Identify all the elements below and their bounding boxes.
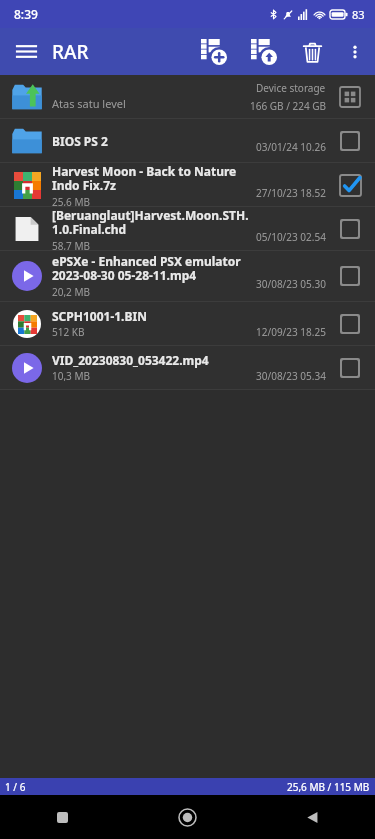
staticText: 05/10/23 02.54 bbox=[256, 230, 326, 244]
button[interactable]: Home bbox=[125, 795, 250, 839]
button[interactable]: Harvest Moon - Back to Nature Indo Fix.7… bbox=[0, 163, 375, 206]
staticText: Atas satu level bbox=[52, 96, 126, 111]
staticText: Harvest Moon - Back to Nature Indo Fix.7… bbox=[52, 163, 250, 194]
staticText: 58,7 MB bbox=[52, 239, 91, 250]
button[interactable]: Add to archive bbox=[189, 28, 239, 75]
button[interactable]: Select item bbox=[335, 261, 365, 291]
staticText: 30/08/23 05.30 bbox=[256, 277, 326, 291]
staticText: [Beruanglaut]Harvest.Moon.STH.1.0.Final.… bbox=[52, 207, 250, 238]
staticText: 03/01/24 10.26 bbox=[256, 140, 326, 154]
button[interactable]: ePSXe - Enhanced PSX emulator 2023-08-30… bbox=[0, 251, 375, 301]
staticText: ePSXe - Enhanced PSX emulator 2023-08-30… bbox=[52, 253, 250, 284]
button[interactable]: Extract archive bbox=[239, 28, 289, 75]
button[interactable]: VID_20230830_053422.mp4 bbox=[0, 346, 375, 389]
button[interactable]: Back bbox=[250, 795, 375, 839]
button[interactable]: Change view bbox=[335, 82, 365, 112]
button[interactable]: Atas satu level bbox=[0, 75, 375, 118]
button[interactable]: Select item bbox=[335, 309, 365, 339]
staticText: 8:39 bbox=[14, 6, 38, 22]
button[interactable]: Recent apps bbox=[0, 795, 125, 839]
staticText: 83 bbox=[352, 7, 365, 22]
staticText: Device storage bbox=[256, 81, 326, 95]
button[interactable]: Select item bbox=[335, 214, 365, 244]
staticText: SCPH1001-1.BIN bbox=[52, 308, 147, 324]
button[interactable]: More options bbox=[335, 32, 375, 72]
button[interactable]: Open navigation drawer bbox=[0, 28, 52, 75]
button[interactable]: Delete bbox=[289, 29, 335, 75]
button[interactable]: BIOS PS 2 bbox=[0, 119, 375, 162]
staticText: 27/10/23 18.52 bbox=[256, 186, 326, 200]
staticText: 30/08/23 05.34 bbox=[256, 369, 326, 383]
staticText: 1 / 6 bbox=[5, 780, 26, 794]
staticText: 12/09/23 18.25 bbox=[256, 325, 326, 339]
staticText: 25,6 MB / 115 MB bbox=[287, 780, 370, 794]
staticText: 25,6 MB bbox=[52, 195, 91, 206]
button[interactable]: [Beruanglaut]Harvest.Moon.STH.1.0.Final.… bbox=[0, 207, 375, 250]
staticText: 166 GB / 224 GB bbox=[250, 99, 326, 113]
staticText: RAR bbox=[52, 39, 89, 65]
staticText: 10,3 MB bbox=[52, 369, 91, 383]
button[interactable]: Select item bbox=[335, 353, 365, 383]
staticText: BIOS PS 2 bbox=[52, 133, 108, 149]
staticText: 512 KB bbox=[52, 325, 85, 339]
button[interactable]: Select item bbox=[335, 170, 365, 200]
button[interactable]: SCPH1001-1.BIN bbox=[0, 302, 375, 345]
staticText: 20,2 MB bbox=[52, 285, 91, 299]
staticText: VID_20230830_053422.mp4 bbox=[52, 352, 209, 368]
button[interactable]: Select item bbox=[335, 126, 365, 156]
